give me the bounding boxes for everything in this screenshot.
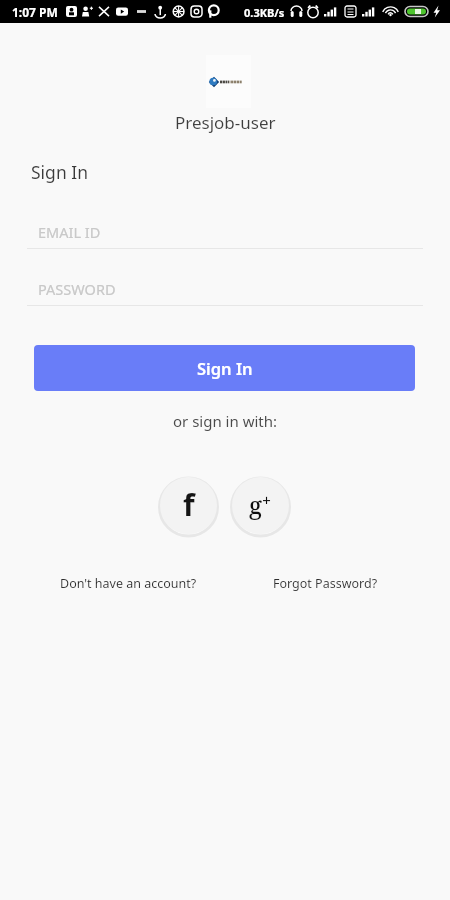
staticText: Forgot Password? [273, 575, 378, 592]
button[interactable]: Sign in with Google Plus [232, 477, 289, 534]
button[interactable]: Forgot Password? [262, 571, 388, 595]
staticText: + [262, 489, 272, 511]
staticText: f [183, 484, 195, 525]
staticText: 1:07 PM [12, 4, 58, 20]
staticText: Don't have an account? [60, 575, 197, 592]
button[interactable]: Sign in with Facebook [160, 477, 217, 534]
button[interactable]: Don't have an account? [46, 571, 211, 595]
button[interactable]: EMAIL ID [27, 212, 423, 248]
staticText: Presjob-user [175, 111, 276, 134]
staticText: g [249, 488, 263, 521]
staticText: 0.3KB/s [244, 5, 285, 20]
staticText: Sign In [31, 160, 88, 184]
staticText: PASSWORD [38, 279, 116, 299]
button[interactable]: PASSWORD [27, 269, 423, 305]
button[interactable]: Sign In [34, 345, 415, 391]
staticText: or sign in with: [173, 411, 278, 431]
staticText: EMAIL ID [38, 222, 101, 242]
staticText: Sign In [197, 357, 253, 379]
